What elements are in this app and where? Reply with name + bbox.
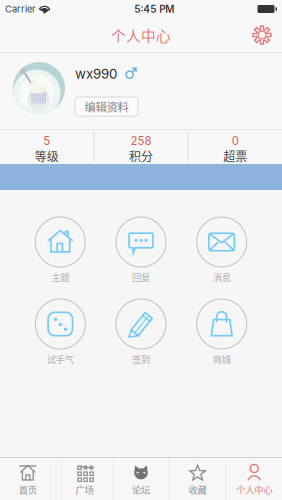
staticText: 首页	[19, 483, 37, 496]
staticText: 主题	[51, 270, 69, 284]
staticText: 等级	[35, 147, 59, 165]
button[interactable]: 主题	[20, 217, 101, 283]
staticText: 签到	[132, 352, 150, 366]
staticText: wx990	[75, 66, 117, 82]
staticText: 广场	[75, 483, 93, 496]
staticText: 5	[43, 134, 50, 148]
button[interactable]: 消息	[181, 217, 262, 283]
button[interactable]: 个人中心	[226, 458, 282, 500]
staticText: 收藏	[189, 483, 207, 496]
staticText: 消息	[213, 270, 231, 284]
staticText: Carrier	[5, 3, 36, 15]
staticText: 5:45 PM	[134, 3, 174, 15]
staticText: 个人中心	[236, 483, 272, 496]
button[interactable]: 论坛	[113, 458, 169, 500]
button[interactable]: Settings	[242, 18, 282, 52]
staticText: 超票	[223, 147, 247, 165]
staticText: 积分	[129, 147, 153, 165]
button[interactable]: 首页	[0, 458, 56, 500]
button[interactable]: 回复	[101, 217, 181, 283]
button[interactable]: 收藏	[170, 458, 225, 500]
button[interactable]: 商城	[181, 299, 262, 365]
button[interactable]: 编辑资料	[75, 97, 138, 116]
staticText: 0	[232, 134, 239, 148]
staticText: 商城	[213, 352, 231, 366]
button[interactable]: 试手气	[20, 299, 101, 365]
staticText: 个人中心	[111, 24, 171, 46]
staticText: 回复	[132, 270, 150, 284]
staticText: 258	[130, 134, 151, 148]
staticText: 论坛	[132, 483, 150, 496]
staticText: 试手气	[47, 352, 74, 366]
button[interactable]: 广场	[57, 458, 112, 500]
button[interactable]: 签到	[101, 299, 181, 365]
staticText: 编辑资料	[84, 98, 128, 115]
